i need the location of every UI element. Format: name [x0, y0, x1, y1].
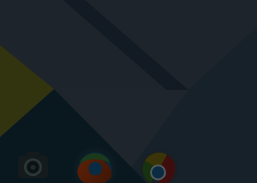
button[interactable]: Firefox browser: [76, 150, 114, 183]
button[interactable]: Chrome browser: [140, 150, 178, 183]
button[interactable]: Camera: [15, 148, 51, 183]
